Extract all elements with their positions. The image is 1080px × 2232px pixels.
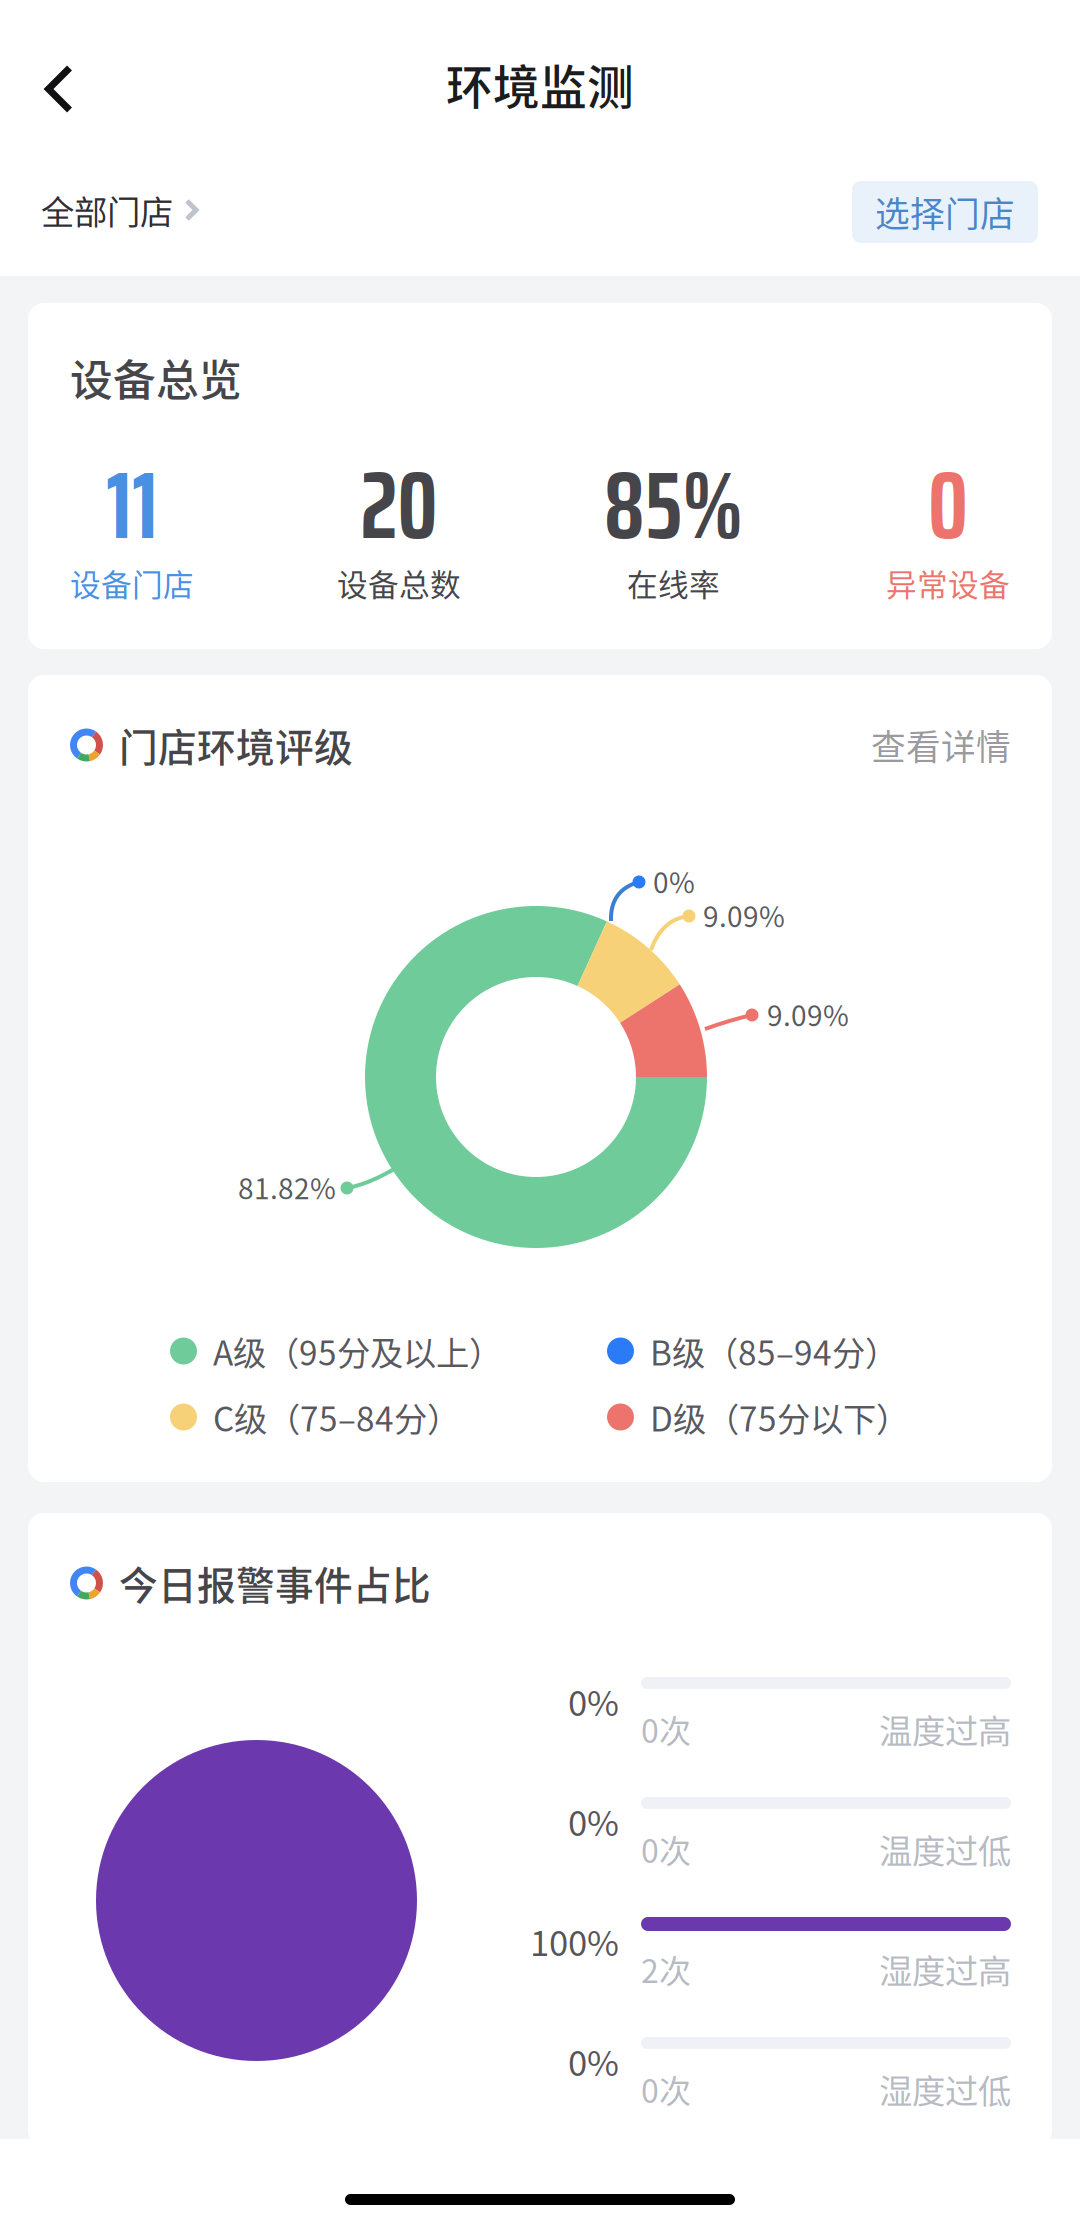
staticText: 2次 — [641, 1946, 691, 1992]
staticText: A级（95分及以上） — [213, 1327, 502, 1375]
button[interactable]: 全部门店 — [0, 164, 219, 280]
staticText: 设备总览 — [70, 347, 242, 408]
staticText: 81.82% — [238, 1167, 336, 1207]
staticText: 今日报警事件占比 — [119, 1555, 431, 1611]
staticText: 11 — [106, 430, 158, 579]
staticText: 100% — [530, 1916, 619, 1966]
staticText: 环境监测 — [446, 50, 634, 118]
staticText: 20 — [360, 430, 437, 579]
staticText: 温度过低 — [879, 1825, 1011, 1873]
button[interactable]: 查看详情 — [871, 720, 1011, 770]
staticText: D级（75分以下） — [650, 1393, 909, 1441]
staticText: 在线率 — [627, 561, 720, 605]
staticText: 0次 — [641, 2066, 691, 2112]
button[interactable]: 选择门店 — [852, 181, 1038, 243]
staticText: 0% — [568, 1676, 619, 1726]
staticText: 0次 — [641, 1826, 691, 1872]
staticText: 湿度过高 — [879, 1945, 1011, 1993]
staticText: 湿度过低 — [879, 2065, 1011, 2113]
staticText: B级（85–94分） — [650, 1327, 898, 1375]
staticText: 0% — [653, 861, 695, 901]
staticText: 选择门店 — [875, 187, 1015, 237]
staticText: 全部门店 — [41, 186, 173, 234]
staticText: 温度过高 — [879, 1705, 1011, 1753]
staticText: C级（75–84分） — [213, 1393, 460, 1441]
staticText: 查看详情 — [871, 720, 1011, 770]
button[interactable]: 返回 — [0, 0, 118, 160]
staticText: 设备门店 — [70, 561, 194, 605]
staticText: 0 — [928, 430, 968, 579]
staticText: 异常设备 — [886, 561, 1010, 605]
staticText: 85% — [604, 430, 743, 579]
staticText: 0% — [568, 1796, 619, 1846]
staticText: 9.09% — [703, 895, 785, 935]
staticText: 0% — [568, 2036, 619, 2086]
staticText: 0次 — [641, 1706, 691, 1752]
staticText: 9.09% — [767, 994, 849, 1034]
staticText: 设备总数 — [337, 561, 461, 605]
staticText: 门店环境评级 — [119, 717, 353, 773]
